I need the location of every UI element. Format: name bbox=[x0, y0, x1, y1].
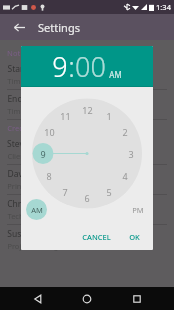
button[interactable]: PM bbox=[127, 199, 148, 220]
staticText: 9 bbox=[40, 148, 46, 160]
button[interactable]: 5 bbox=[101, 184, 117, 200]
button[interactable]: 00 bbox=[75, 48, 106, 85]
staticText: Notifications bbox=[7, 48, 53, 58]
button[interactable]: Home bbox=[75, 287, 99, 310]
button[interactable]: OK bbox=[124, 228, 145, 246]
button[interactable]: 9 bbox=[35, 146, 51, 162]
staticText: End bbox=[7, 93, 23, 105]
staticText: CANCEL bbox=[82, 232, 111, 242]
staticText: Time bbox=[7, 106, 25, 116]
staticText: : bbox=[68, 48, 75, 85]
staticText: 1:34 bbox=[156, 2, 171, 12]
staticText: 6 bbox=[84, 192, 90, 204]
staticText: Client bbox=[7, 151, 28, 161]
staticText: 10 bbox=[44, 126, 55, 138]
staticText: 2 bbox=[122, 126, 128, 138]
staticText: 12 bbox=[82, 104, 93, 116]
staticText: 11 bbox=[60, 110, 71, 122]
button[interactable]: 7 bbox=[57, 184, 73, 200]
button[interactable]: AM bbox=[26, 199, 47, 220]
button[interactable]: Back bbox=[26, 287, 50, 310]
button[interactable]: Back bbox=[9, 17, 29, 37]
staticText: 7 bbox=[62, 186, 68, 198]
staticText: AM bbox=[31, 205, 43, 215]
button[interactable]: End bbox=[7, 90, 167, 119]
staticText: 9 bbox=[52, 48, 68, 85]
button[interactable]: CANCEL bbox=[77, 228, 116, 246]
button[interactable]: Start bbox=[7, 60, 167, 89]
staticText: Susan Mae Kaiser bbox=[7, 228, 78, 240]
button[interactable]: 1 bbox=[101, 108, 117, 124]
staticText: 1 bbox=[106, 110, 112, 122]
staticText: Credentials bbox=[7, 123, 48, 133]
button[interactable]: 6 bbox=[79, 190, 95, 206]
button[interactable]: Steve Smith bbox=[7, 135, 167, 164]
button[interactable]: Dave Brown bbox=[7, 165, 167, 194]
staticText: 00 bbox=[75, 48, 106, 85]
staticText: OK bbox=[129, 232, 140, 242]
staticText: Settings bbox=[38, 20, 80, 35]
staticText: 8 bbox=[46, 170, 52, 182]
staticText: Chris Lee bbox=[7, 198, 44, 210]
button[interactable]: Chris Lee bbox=[7, 195, 167, 224]
staticText: 4 bbox=[122, 170, 128, 182]
button[interactable]: 12 bbox=[79, 102, 95, 118]
staticText: Steve Smith bbox=[7, 138, 54, 150]
button[interactable]: 10 bbox=[41, 124, 57, 140]
staticText: PM bbox=[132, 205, 144, 215]
staticText: Time bbox=[7, 76, 25, 86]
staticText: Dave Brown bbox=[7, 168, 56, 180]
button[interactable]: Susan Mae Kaiser bbox=[7, 225, 167, 254]
staticText: Start bbox=[7, 63, 27, 75]
button[interactable]: 2 bbox=[117, 124, 133, 140]
button[interactable]: 4 bbox=[117, 168, 133, 184]
button[interactable]: 3 bbox=[123, 146, 139, 162]
button[interactable]: 11 bbox=[57, 108, 73, 124]
staticText: 5 bbox=[106, 186, 112, 198]
button[interactable]: Recents bbox=[125, 287, 149, 310]
staticText: Project Manager bbox=[7, 241, 66, 251]
staticText: Principal bbox=[7, 181, 38, 191]
staticText: Tech Lead bbox=[7, 211, 43, 221]
button[interactable]: 8 bbox=[41, 168, 57, 184]
staticText: 3 bbox=[128, 148, 134, 160]
staticText: AM bbox=[109, 69, 122, 80]
button[interactable]: 9 bbox=[52, 48, 68, 85]
